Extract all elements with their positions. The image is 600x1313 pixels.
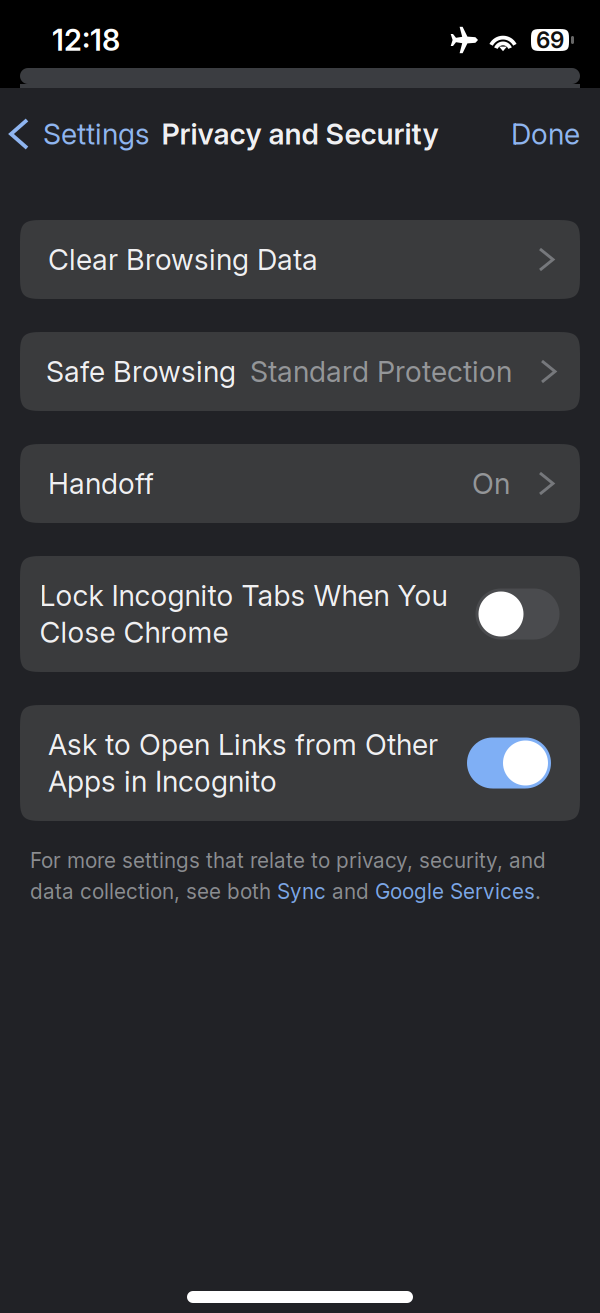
button[interactable]: Lock Incognito Tabs When You (20, 556, 580, 672)
staticText: Apps in Incognito (48, 764, 277, 799)
button[interactable]: Safe Browsing (20, 332, 580, 411)
staticText: Done (511, 117, 580, 151)
staticText: Privacy and Security (161, 117, 438, 151)
button[interactable]: Google Services (375, 879, 535, 904)
staticText: Ask to Open Links from Other (48, 727, 438, 762)
staticText: Close Chrome (39, 615, 228, 650)
button[interactable]: Settings (2, 103, 159, 165)
staticText: data collection, see both (30, 879, 277, 904)
button[interactable]: Done (493, 106, 598, 162)
staticText: Settings (43, 117, 150, 151)
staticText: . (535, 879, 541, 904)
staticText: Handoff (48, 466, 154, 501)
button[interactable]: Sync (277, 879, 326, 904)
staticText: Standard Protection (250, 354, 512, 389)
button[interactable]: Ask to Open Links from Other (20, 705, 580, 821)
staticText: Safe Browsing (46, 354, 236, 389)
staticText: 69 (536, 26, 564, 54)
button[interactable]: Clear Browsing Data (20, 220, 580, 299)
staticText: For more settings that relate to privacy… (30, 848, 546, 873)
staticText: Sync (277, 879, 326, 904)
staticText: Google Services (375, 879, 535, 904)
staticText: and (326, 879, 375, 904)
button[interactable]: Handoff (20, 444, 580, 523)
staticText: 12:18 (52, 22, 120, 58)
staticText: Clear Browsing Data (48, 242, 318, 277)
staticText: On (472, 466, 510, 501)
staticText: Lock Incognito Tabs When You (39, 578, 447, 613)
